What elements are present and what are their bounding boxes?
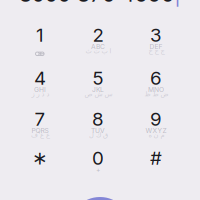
button[interactable]: 6	[128, 70, 184, 104]
button[interactable]: #	[128, 150, 184, 184]
staticText: د ذ ر ز	[31, 90, 49, 98]
staticText: 9	[150, 108, 162, 130]
staticText: 4	[34, 67, 46, 89]
staticText: 2	[92, 24, 103, 46]
button[interactable]: 7	[12, 111, 68, 145]
staticText: ABC	[91, 42, 105, 51]
button[interactable]: 4	[12, 70, 68, 104]
staticText: م ن ه	[148, 131, 164, 139]
staticText: 5	[92, 67, 103, 89]
staticText: GHI	[34, 85, 46, 94]
staticText: ع غ ف	[30, 131, 49, 139]
button[interactable]: 5	[70, 70, 126, 104]
staticText: 0	[92, 147, 104, 169]
staticText: MNO	[148, 85, 164, 94]
button[interactable]: ∗	[12, 150, 68, 184]
staticText: +	[96, 165, 100, 174]
staticText: #	[150, 147, 162, 169]
staticText: 8	[92, 108, 104, 130]
button[interactable]: 9	[128, 111, 184, 145]
button[interactable]: 1	[12, 27, 68, 61]
staticText: |	[174, 0, 181, 7]
staticText: 6	[150, 67, 162, 89]
staticText: ض ط ظ	[144, 90, 168, 98]
staticText: 1	[36, 24, 44, 46]
staticText: ج ح خ	[148, 47, 164, 55]
staticText: JKL	[92, 85, 104, 94]
staticText: 3	[150, 24, 162, 46]
staticText: س ش ص	[84, 90, 112, 98]
staticText: PQRS	[31, 126, 48, 135]
staticText: TUV	[91, 126, 105, 135]
button[interactable]: 3	[128, 27, 184, 61]
staticText: 7	[34, 108, 45, 130]
staticText: WXYZ	[145, 126, 166, 135]
button[interactable]: 0	[70, 150, 126, 184]
button[interactable]: 2	[70, 27, 126, 61]
staticText: ∗	[32, 147, 48, 169]
button[interactable]: 8	[70, 111, 126, 145]
staticText: ا ب ت ث	[85, 47, 111, 55]
button[interactable]: Call	[69, 197, 131, 200]
staticText: ق ك ل	[88, 131, 107, 139]
staticText: DEF	[149, 42, 162, 51]
staticText: 8999 876 4556	[19, 0, 174, 7]
